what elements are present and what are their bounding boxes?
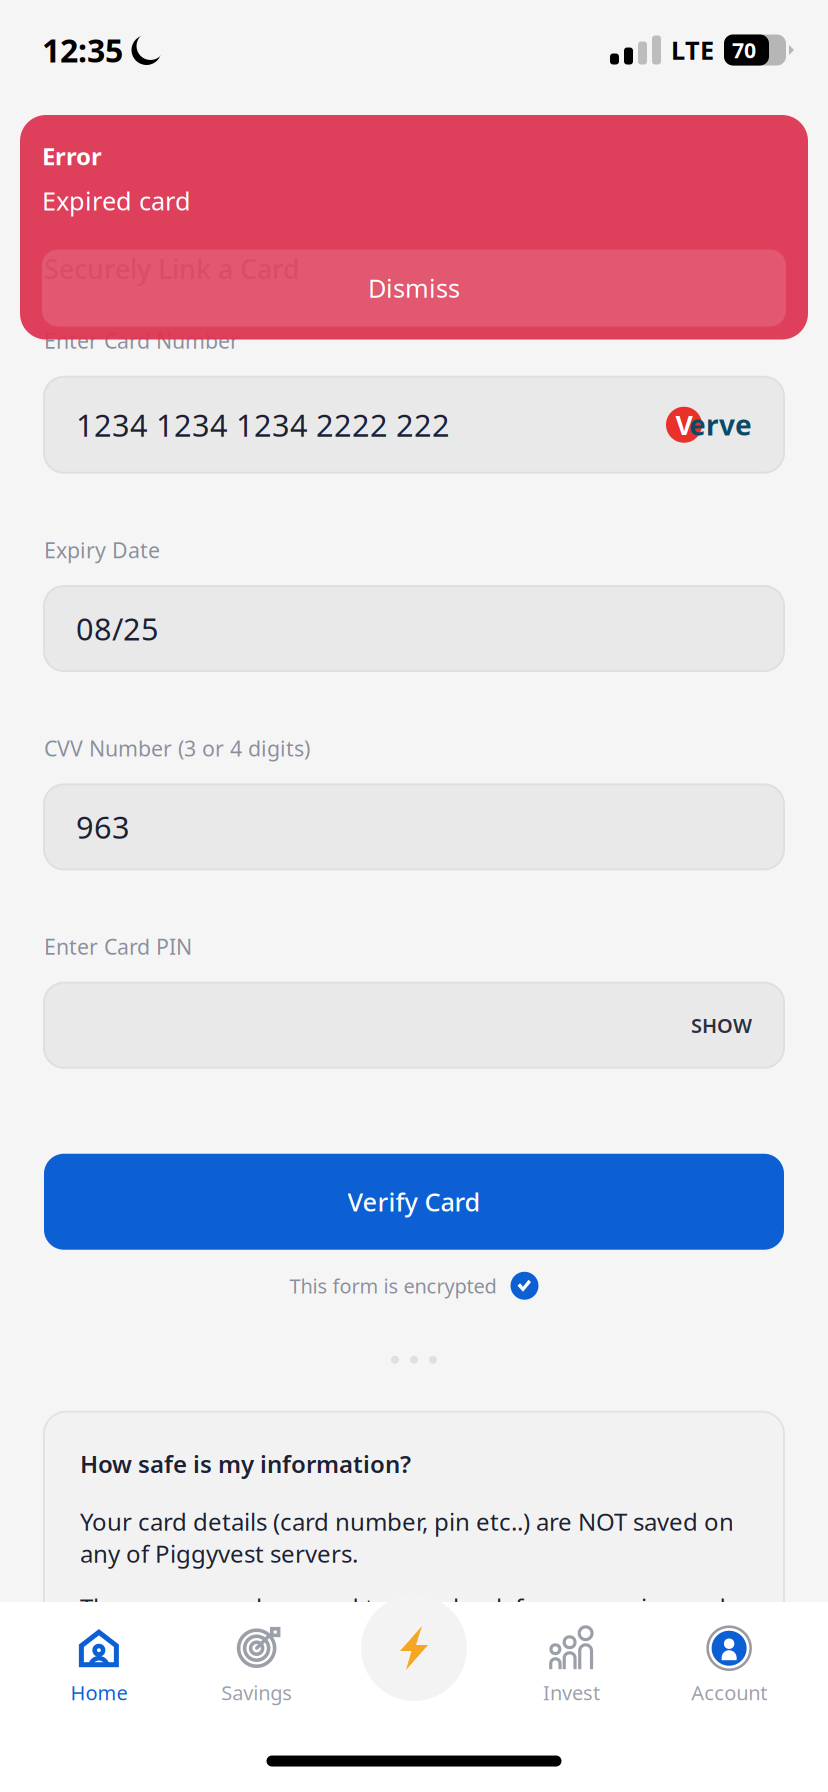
staticText: SHOW bbox=[691, 1012, 752, 1039]
staticText: 12:35 bbox=[42, 29, 123, 71]
staticText: Savings bbox=[221, 1679, 292, 1706]
button[interactable]: Quick actions bbox=[361, 1595, 467, 1701]
staticText: LTE bbox=[671, 33, 714, 67]
button[interactable]: Dismiss bbox=[42, 249, 786, 326]
staticText: 963 bbox=[76, 806, 130, 847]
button[interactable]: SHOW bbox=[691, 1012, 752, 1039]
button[interactable]: Invest bbox=[492, 1606, 650, 1726]
staticText: Invest bbox=[543, 1679, 600, 1706]
staticText: Enter Card PIN bbox=[44, 932, 192, 961]
staticText: 08/25 bbox=[76, 608, 159, 649]
staticText: 1234 1234 1234 2222 222 bbox=[76, 404, 450, 445]
staticText: Securely Link a Card bbox=[44, 251, 300, 286]
staticText: CVV Number (3 or 4 digits) bbox=[44, 734, 310, 762]
staticText: Account bbox=[691, 1679, 767, 1706]
button[interactable]: Verify Card bbox=[44, 1154, 784, 1250]
staticText: Enter Card Number bbox=[44, 326, 239, 355]
staticText: V bbox=[675, 407, 692, 442]
staticText: Your card details (card number, pin etc.… bbox=[80, 1506, 734, 1569]
button[interactable]: Home bbox=[20, 1606, 178, 1726]
staticText: Dismiss bbox=[368, 271, 460, 305]
staticText: Error bbox=[42, 140, 102, 172]
staticText: Expiry Date bbox=[44, 536, 160, 564]
staticText: Verify Card bbox=[347, 1185, 480, 1218]
staticText: 70 bbox=[732, 36, 756, 64]
staticText: Expired card bbox=[42, 184, 191, 217]
staticText: Home bbox=[70, 1679, 127, 1706]
staticText: How safe is my information? bbox=[80, 1448, 411, 1480]
staticText: They are securely passed to your bank fo… bbox=[80, 1591, 726, 1655]
staticText: erve bbox=[689, 406, 752, 443]
button[interactable]: Savings bbox=[178, 1606, 336, 1726]
staticText: This form is encrypted bbox=[289, 1272, 496, 1299]
button[interactable]: Account bbox=[650, 1606, 808, 1726]
